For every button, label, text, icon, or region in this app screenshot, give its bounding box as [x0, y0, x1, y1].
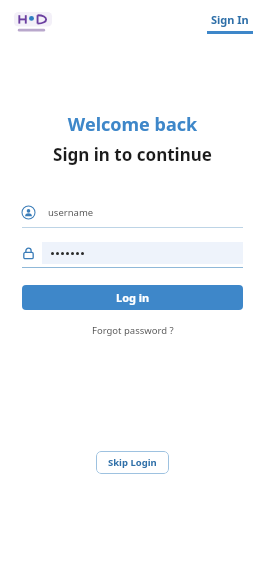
- staticText: Sign In: [211, 12, 249, 27]
- staticText: Skip Login: [108, 456, 157, 469]
- button[interactable]: Skip Login: [96, 451, 169, 474]
- button[interactable]: H2D Sports logo: [14, 12, 52, 34]
- button[interactable]: [22, 242, 243, 268]
- staticText: Log in: [116, 290, 150, 305]
- button[interactable]: Forgot password ?: [86, 322, 180, 339]
- staticText: Sign in to continue: [0, 143, 265, 166]
- button[interactable]: Sign In: [207, 12, 253, 34]
- button[interactable]: Log in: [22, 285, 243, 310]
- button[interactable]: username: [22, 201, 243, 228]
- staticText: username: [48, 206, 94, 219]
- staticText: Welcome back: [0, 112, 265, 137]
